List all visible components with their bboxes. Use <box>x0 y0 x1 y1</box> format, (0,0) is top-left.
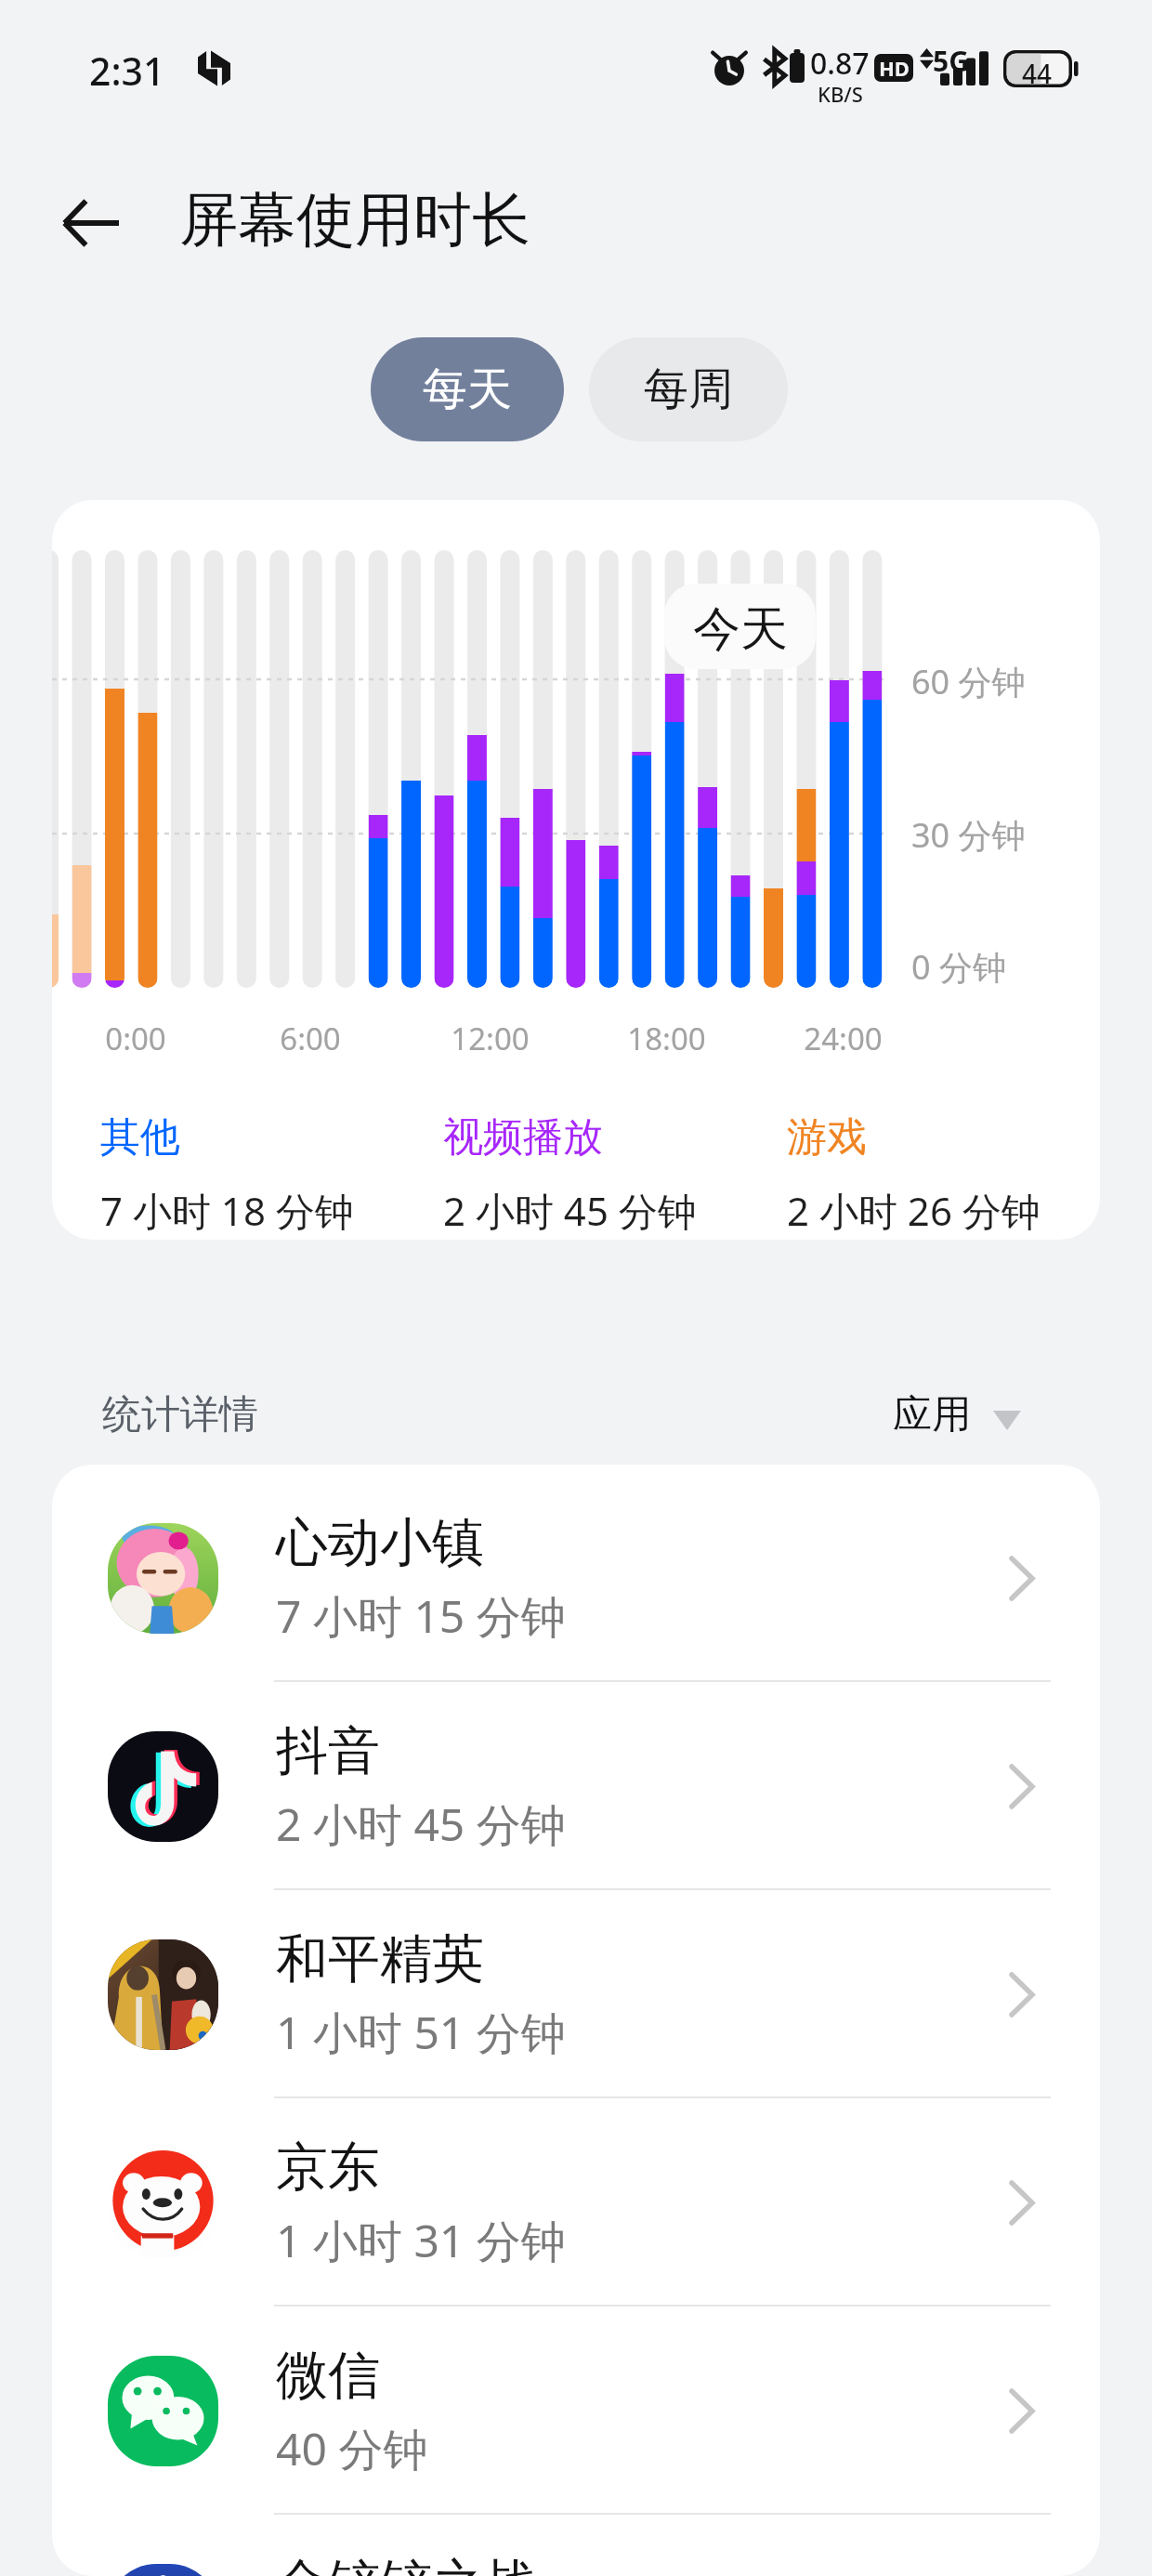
staticText: 2 小时 26 分钟 <box>787 1184 1041 1237</box>
staticText: 2 小时 45 分钟 <box>443 1184 697 1237</box>
staticText: 每周 <box>644 361 733 417</box>
staticText: 心动小镇 <box>276 1510 484 1576</box>
button[interactable]: 金铲铲之战 <box>52 2515 1100 2576</box>
staticText: 京东 <box>276 2135 380 2201</box>
button[interactable]: Back <box>45 177 137 269</box>
staticText: 0:00 <box>105 1018 166 1059</box>
staticText: 0.87 <box>810 43 870 84</box>
staticText: 统计详情 <box>102 1390 258 1439</box>
staticText: 6:00 <box>280 1018 341 1059</box>
staticText: 和平精英 <box>276 1926 484 1992</box>
staticText: 2 小时 45 分钟 <box>276 1794 566 1855</box>
staticText: 24:00 <box>804 1018 883 1059</box>
button[interactable]: 微信 <box>52 2307 1100 2515</box>
staticText: 其他 <box>100 1112 180 1163</box>
staticText: 视频播放 <box>443 1112 603 1163</box>
staticText: 0 分钟 <box>911 944 1006 990</box>
staticText: 12:00 <box>451 1018 530 1059</box>
button[interactable]: 每天 <box>371 337 564 441</box>
button[interactable]: 和平精英 <box>52 1890 1100 2098</box>
button[interactable]: 每周 <box>589 337 788 441</box>
staticText: 7 小时 15 分钟 <box>276 1585 566 1647</box>
button[interactable]: 抖音 <box>52 1682 1100 1890</box>
staticText: 每天 <box>423 361 512 417</box>
staticText: 44 <box>1022 56 1053 91</box>
button[interactable]: 心动小镇 <box>52 1474 1100 1682</box>
staticText: 60 分钟 <box>911 659 1026 704</box>
staticText: 抖音 <box>276 1718 380 1784</box>
staticText: 今天 <box>693 599 788 659</box>
staticText: 金铲铲之战 <box>276 2551 536 2576</box>
staticText: 5G <box>933 42 969 80</box>
staticText: 30 分钟 <box>911 812 1026 858</box>
staticText: HD <box>879 54 910 82</box>
staticText: 2:31 <box>89 45 165 97</box>
staticText: 1 小时 31 分钟 <box>276 2210 566 2271</box>
staticText: 18:00 <box>627 1018 706 1059</box>
staticText: 游戏 <box>787 1112 867 1163</box>
button[interactable]: 京东 <box>52 2098 1100 2307</box>
staticText: 屏幕使用时长 <box>179 183 530 256</box>
staticText: 应用 <box>893 1390 971 1439</box>
staticText: 7 小时 18 分钟 <box>100 1184 354 1237</box>
staticText: 1 小时 51 分钟 <box>276 2002 566 2063</box>
button[interactable]: 应用 <box>893 1390 1021 1439</box>
staticText: 40 分钟 <box>276 2418 428 2479</box>
staticText: 微信 <box>276 2343 380 2409</box>
staticText: KB/S <box>818 80 863 108</box>
